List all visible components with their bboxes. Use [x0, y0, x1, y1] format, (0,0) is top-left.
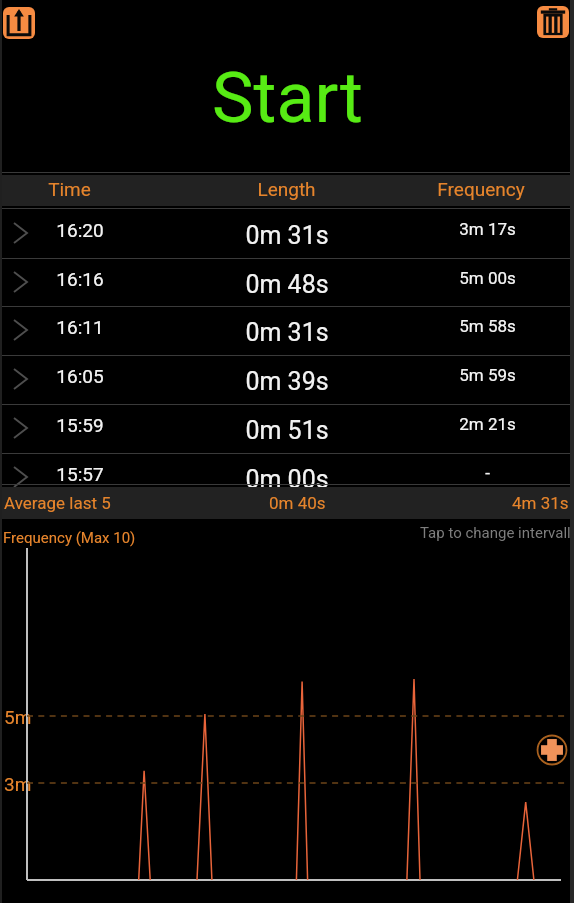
button[interactable]: 16:11: [0, 306, 574, 355]
staticText: 15:59: [56, 414, 104, 436]
button[interactable]: Share: [3, 7, 35, 39]
button[interactable]: Delete: [537, 6, 569, 38]
staticText: 0m 31s: [245, 221, 329, 250]
staticText: 0m 40s: [269, 493, 326, 513]
button[interactable]: Tap to change intervall: [0, 522, 574, 544]
staticText: 5m 00s: [459, 268, 516, 288]
staticText: 2m 21s: [459, 414, 516, 434]
staticText: 3m 17s: [459, 219, 516, 239]
staticText: Tap to change intervall: [420, 524, 571, 542]
staticText: 0m 48s: [245, 270, 329, 299]
staticText: 3m: [4, 773, 32, 795]
button[interactable]: 15:59: [0, 404, 574, 453]
staticText: 0m 31s: [245, 318, 329, 347]
staticText: Frequency: [437, 178, 525, 200]
staticText: 16:05: [56, 365, 104, 387]
button[interactable]: Add: [536, 734, 568, 766]
staticText: 4m 31s: [512, 493, 569, 513]
staticText: 0m 51s: [245, 416, 329, 445]
button[interactable]: 16:16: [0, 258, 574, 307]
staticText: Frequency (Max 10): [3, 529, 136, 547]
staticText: 5m 58s: [459, 316, 516, 336]
staticText: -: [485, 463, 490, 483]
staticText: 5m 59s: [459, 365, 516, 385]
button[interactable]: Frequency: [421, 173, 541, 204]
button[interactable]: Average last 5: [0, 487, 574, 519]
staticText: Length: [257, 178, 316, 200]
button[interactable]: 16:20: [0, 209, 574, 258]
staticText: Time: [48, 178, 91, 200]
staticText: 0m 00s: [245, 465, 329, 494]
button[interactable]: Start: [0, 35, 574, 160]
button[interactable]: Length: [226, 173, 346, 204]
button[interactable]: 16:05: [0, 355, 574, 404]
staticText: 0m 39s: [245, 367, 329, 396]
staticText: Average last 5: [4, 493, 111, 513]
staticText: 16:11: [56, 316, 104, 338]
staticText: 16:16: [56, 268, 104, 290]
staticText: 5m: [4, 706, 32, 728]
button[interactable]: Time: [9, 173, 129, 204]
staticText: 15:57: [56, 463, 104, 485]
staticText: 16:20: [56, 219, 104, 241]
button[interactable]: 15:57: [0, 453, 574, 502]
staticText: Start: [212, 57, 363, 139]
